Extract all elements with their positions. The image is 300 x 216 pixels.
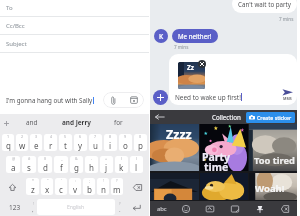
button[interactable]: Send [280, 89, 294, 101]
button[interactable]: 3 [30, 134, 42, 151]
button[interactable]: Backspace [272, 201, 297, 216]
staticText: w [19, 140, 26, 151]
button[interactable]: " [41, 178, 53, 195]
staticText: 1 [7, 134, 10, 139]
button[interactable]: Backspace [126, 178, 148, 196]
button[interactable]: ! [97, 178, 109, 195]
staticText: I'm gonna hang out with Sally [6, 96, 93, 104]
staticText: 9 [124, 134, 127, 139]
button[interactable]: Cc/Bcc [6, 22, 25, 30]
staticText: - [91, 156, 93, 161]
staticText: , [32, 206, 34, 214]
button[interactable]: Add attachment [153, 90, 168, 105]
button[interactable]: Shift [1, 178, 23, 196]
button[interactable]: 6 [74, 134, 87, 151]
button[interactable]: Me neither! [178, 29, 212, 43]
button[interactable]: Back [150, 110, 170, 124]
staticText: 7 mins [279, 16, 294, 22]
button[interactable]: Create sticker [249, 112, 292, 123]
staticText: o [123, 140, 128, 151]
staticText: m [113, 184, 121, 195]
staticText: r [49, 140, 53, 151]
button[interactable]: Party time sticker [200, 124, 248, 171]
staticText: # [28, 156, 31, 161]
button[interactable]: Remove sticker [198, 60, 206, 68]
button[interactable]: ! [29, 198, 36, 216]
staticText: 2 [21, 134, 24, 139]
button[interactable]: Yellow dog sticker [200, 173, 248, 200]
button[interactable]: Can't wait to party [238, 0, 291, 13]
button[interactable]: ( [115, 156, 128, 173]
staticText: ) [136, 156, 138, 161]
button[interactable]: Emoji [174, 201, 198, 216]
staticText: j [105, 162, 108, 173]
staticText: ! [103, 178, 104, 183]
button[interactable]: - [85, 156, 98, 173]
button[interactable]: 0 [134, 134, 147, 151]
staticText: $ [44, 156, 47, 161]
button[interactable]: + [100, 156, 113, 173]
button[interactable]: & [70, 156, 83, 173]
button[interactable]: ' [55, 178, 67, 195]
staticText: MMS [283, 96, 292, 101]
button[interactable]: ? [111, 178, 123, 195]
button[interactable]: GIF [198, 201, 222, 216]
button[interactable]: * [26, 178, 39, 195]
staticText: Woah! [255, 182, 285, 195]
staticText: e [34, 140, 39, 151]
button[interactable]: ? [116, 198, 123, 216]
staticText: ; [89, 178, 90, 183]
staticText: _ [61, 156, 63, 161]
button[interactable]: To [6, 4, 13, 12]
button[interactable]: 2 [16, 134, 28, 151]
button[interactable]: 8 [104, 134, 117, 151]
staticText: 3 [35, 134, 38, 139]
button[interactable]: @ [6, 156, 20, 173]
staticText: . [119, 206, 121, 214]
button[interactable]: Insert image [123, 92, 144, 108]
button[interactable]: Zz [178, 62, 205, 89]
staticText: 8 [109, 134, 112, 139]
staticText: x [45, 184, 50, 195]
button[interactable]: Subject [6, 40, 27, 48]
button[interactable]: English [37, 199, 115, 215]
button[interactable]: Stickers [222, 201, 247, 216]
staticText: z [31, 184, 35, 195]
button[interactable]: for [101, 114, 135, 131]
button[interactable]: Kate avatar [154, 29, 168, 43]
button[interactable]: Too tired sticker [249, 124, 297, 171]
button[interactable]: Zzzz sticker [150, 124, 199, 171]
button[interactable]: # [22, 156, 36, 173]
staticText: i [109, 140, 112, 151]
staticText: : [75, 178, 76, 183]
button[interactable]: ) [130, 156, 143, 173]
button[interactable]: Woah sticker [249, 173, 297, 200]
button[interactable]: and [13, 114, 51, 131]
staticText: p [138, 140, 143, 151]
staticText: To [6, 4, 13, 12]
staticText: ? [116, 178, 118, 183]
button[interactable]: : [69, 178, 81, 195]
staticText: and [26, 118, 38, 127]
button[interactable]: and Jerry [51, 114, 101, 131]
button[interactable]: More suggestions [0, 114, 13, 131]
staticText: 0 [139, 134, 142, 139]
button[interactable]: 9 [119, 134, 132, 151]
button[interactable]: Enter [123, 198, 149, 216]
button[interactable]: _ [54, 156, 68, 173]
button[interactable]: 7 [89, 134, 102, 151]
button[interactable]: $ [38, 156, 52, 173]
button[interactable]: 123 [0, 198, 29, 216]
button[interactable]: 1 [2, 134, 14, 151]
button[interactable]: 5 [59, 134, 72, 151]
button[interactable]: abc [150, 201, 174, 216]
button[interactable]: Attach file [103, 92, 123, 108]
button[interactable]: 4 [44, 134, 57, 151]
staticText: @ [12, 156, 16, 161]
staticText: t [64, 140, 67, 151]
staticText: Subject [6, 40, 27, 48]
button[interactable]: ; [83, 178, 95, 195]
staticText: & [75, 156, 78, 161]
button[interactable]: Pin [247, 201, 272, 216]
button[interactable]: Dog house sticker [150, 173, 199, 200]
